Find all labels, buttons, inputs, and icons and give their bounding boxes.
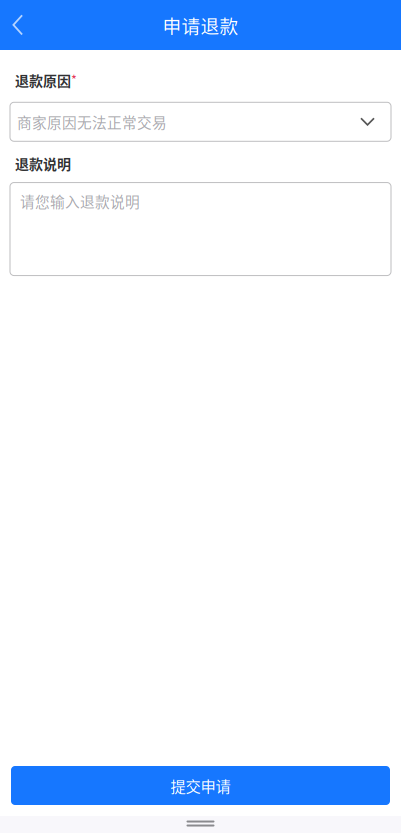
button[interactable]: 提交申请	[11, 766, 390, 805]
staticText: 提交申请	[170, 774, 230, 797]
staticText: 退款原因	[15, 70, 71, 90]
button[interactable]: Back	[0, 0, 36, 50]
staticText: *	[71, 70, 77, 88]
button[interactable]: 商家原因无法正常交易	[10, 102, 391, 141]
staticText: 商家原因无法正常交易	[17, 111, 167, 132]
staticText: 退款说明	[15, 153, 71, 174]
staticText: 申请退款	[162, 11, 238, 38]
staticText: 请您输入退款说明	[20, 190, 140, 212]
